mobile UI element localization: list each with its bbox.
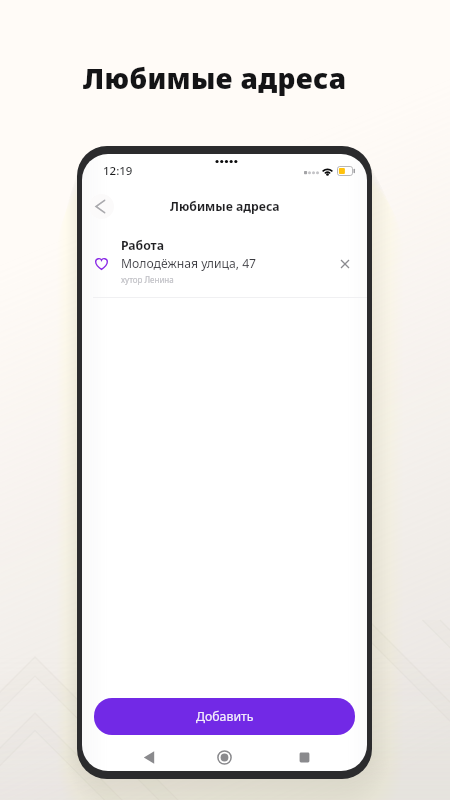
staticText: хутор Ленина bbox=[121, 274, 174, 285]
staticText: Молодёжная улица, 47 bbox=[121, 255, 257, 272]
button[interactable]: Работа bbox=[82, 228, 367, 298]
staticText: Работа bbox=[121, 237, 165, 254]
button[interactable]: Back bbox=[89, 194, 114, 219]
staticText: Любимые адреса bbox=[83, 59, 347, 97]
staticText: 12:19 bbox=[103, 163, 133, 179]
button[interactable]: Добавить bbox=[94, 698, 355, 735]
button[interactable]: Remove address bbox=[334, 253, 356, 275]
staticText: Добавить bbox=[196, 708, 254, 725]
staticText: Любимые адреса bbox=[170, 198, 280, 215]
